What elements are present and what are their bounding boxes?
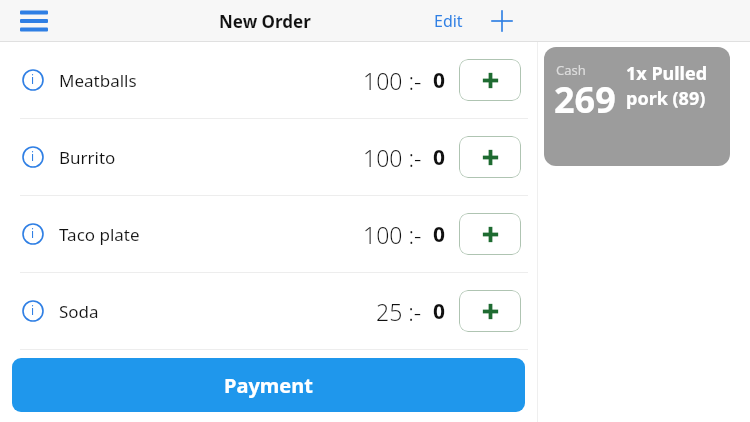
button[interactable]: Info (22, 223, 44, 245)
button[interactable]: Add (487, 6, 517, 36)
button[interactable]: Add Burrito (459, 136, 521, 178)
staticText: 269 (554, 75, 616, 124)
staticText: 0 (433, 297, 446, 326)
button[interactable]: Edit (428, 4, 469, 38)
staticText: i (31, 225, 35, 241)
button[interactable]: Add Taco plate (459, 213, 521, 255)
staticText: Burrito (59, 146, 116, 169)
button[interactable]: Info (0, 119, 537, 195)
staticText: 0 (433, 220, 446, 249)
staticText: 1x Pulled pork (89) (626, 61, 720, 111)
button[interactable]: Info (22, 146, 44, 168)
staticText: Edit (434, 10, 463, 32)
staticText: Taco plate (59, 223, 140, 246)
button[interactable]: Info (22, 69, 44, 91)
staticText: i (31, 71, 35, 87)
button[interactable]: Add Meatballs (459, 59, 521, 101)
button[interactable]: Info (22, 300, 44, 322)
staticText: New Order (219, 10, 311, 33)
button[interactable]: Add Soda (459, 290, 521, 332)
button[interactable]: Info (0, 196, 537, 272)
button[interactable]: Info (0, 42, 537, 118)
staticText: i (31, 302, 35, 318)
staticText: 100 :- (363, 219, 422, 250)
staticText: Soda (59, 300, 99, 323)
staticText: 100 :- (363, 142, 422, 173)
button[interactable]: Info (0, 273, 537, 349)
staticText: i (31, 148, 35, 164)
staticText: 100 :- (363, 65, 422, 96)
staticText: 0 (433, 66, 446, 95)
staticText: Meatballs (59, 69, 137, 92)
staticText: 25 :- (376, 296, 422, 327)
staticText: Payment (224, 372, 313, 399)
staticText: 0 (433, 143, 446, 172)
staticText: Cash (556, 61, 586, 79)
button[interactable]: Payment (12, 358, 525, 412)
button[interactable]: Cash (544, 47, 730, 166)
button[interactable]: Menu (12, 0, 56, 42)
